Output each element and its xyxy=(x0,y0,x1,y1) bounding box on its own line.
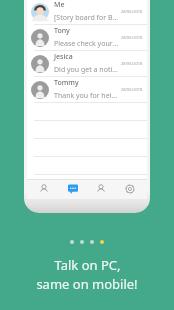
button[interactable]: Chats xyxy=(61,179,85,199)
button[interactable]: Me xyxy=(27,0,147,24)
staticText: Please check your e... xyxy=(54,39,119,49)
staticText: Tommy xyxy=(54,78,79,88)
button[interactable]: Settings xyxy=(118,179,142,199)
button[interactable]: Friends xyxy=(89,179,113,199)
staticText: Me xyxy=(54,0,65,10)
staticText: Jesica xyxy=(54,52,73,62)
staticText: same on mobile! xyxy=(36,275,138,293)
staticText: 28/06/2018 xyxy=(121,87,143,92)
staticText: 28/06/2018 xyxy=(121,35,143,40)
staticText: [Story board for BN... xyxy=(54,13,119,23)
staticText: Thank you for help :) xyxy=(54,91,119,101)
staticText: Tony xyxy=(54,26,70,36)
staticText: 28/06/2018 xyxy=(121,61,143,66)
button[interactable]: Tommy xyxy=(27,77,147,102)
staticText: Talk on PC, xyxy=(54,256,121,274)
button[interactable]: Tony xyxy=(27,25,147,50)
staticText: 28/06/2018 xyxy=(121,9,143,14)
button[interactable]: Jesica xyxy=(27,51,147,76)
staticText: Did you get a notica... xyxy=(54,65,119,75)
button[interactable]: Contacts xyxy=(32,179,56,199)
